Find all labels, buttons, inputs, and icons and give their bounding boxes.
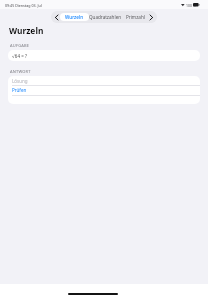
staticText: Quadratzahlen — [89, 14, 122, 20]
staticText: Wurzeln — [9, 25, 44, 36]
button[interactable]: Prüfen — [8, 85, 200, 94]
staticText: Wurzeln — [65, 14, 84, 20]
button[interactable]: Quadratzahlen — [88, 11, 122, 23]
button[interactable] — [51, 11, 61, 23]
staticText: Lösung — [12, 78, 28, 84]
button[interactable]: Wurzeln — [60, 13, 89, 21]
button[interactable]: Primzahl — [124, 11, 146, 23]
staticText: Prüfen — [12, 87, 27, 93]
staticText: ANTWORT — [10, 69, 31, 74]
staticText: 100 % — [186, 3, 196, 8]
button[interactable] — [146, 11, 157, 23]
staticText: √64 = ? — [12, 53, 27, 59]
staticText: 09:45 Dienstag 03. Jul — [5, 3, 42, 8]
button[interactable]: Lösung — [8, 76, 200, 85]
staticText: Primzahl — [126, 14, 145, 20]
staticText: AUFGABE — [10, 43, 30, 48]
